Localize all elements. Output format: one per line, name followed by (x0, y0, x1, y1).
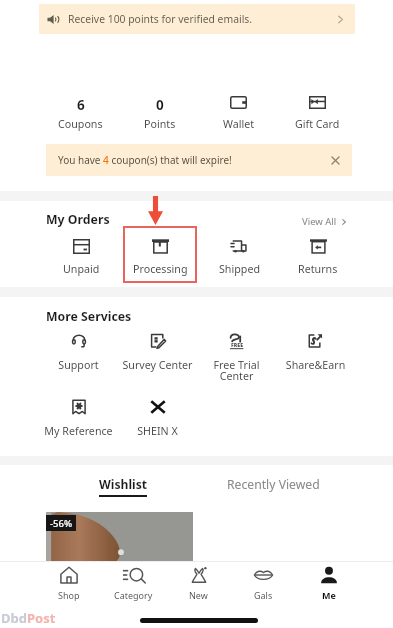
staticText: Returns (298, 262, 338, 277)
button[interactable]: 0 (120, 96, 199, 132)
staticText: 6 (77, 96, 85, 114)
button[interactable]: Gift Card (278, 96, 357, 132)
button[interactable]: New (166, 565, 231, 601)
staticText: Me (322, 589, 336, 601)
staticText: Coupons (58, 117, 103, 132)
button[interactable]: My Reference (39, 399, 118, 439)
button[interactable]: View All (300, 213, 350, 230)
staticText: View All (302, 215, 337, 228)
button[interactable]: You have 4 coupon(s) that will expire! (46, 144, 352, 176)
other: Close (330, 155, 341, 166)
staticText: My Orders (46, 211, 110, 228)
button[interactable]: Support (39, 333, 118, 373)
staticText: Category (114, 589, 153, 601)
button[interactable]: Recently Viewed (227, 476, 320, 493)
button[interactable]: Wishlist (93, 476, 153, 497)
staticText: Points (144, 117, 176, 132)
staticText: My Reference (39, 424, 118, 439)
staticText: More Services (46, 308, 132, 325)
button[interactable]: FREE (197, 333, 276, 383)
button[interactable]: Gals (231, 565, 296, 601)
staticText: Gift Card (295, 117, 340, 132)
staticText: Free Trial Center (197, 358, 276, 383)
staticText: Shipped (219, 262, 260, 277)
button[interactable]: Processing (123, 226, 197, 283)
staticText: You have 4 coupon(s) that will expire! (58, 153, 232, 167)
button[interactable]: Unpaid (44, 226, 118, 283)
button[interactable]: Share&Earn (276, 333, 355, 373)
staticText: Survey Center (118, 358, 197, 373)
button[interactable]: Me (296, 565, 361, 601)
staticText: Receive 100 points for verified emails. (68, 12, 253, 26)
staticText: Recently Viewed (227, 476, 320, 493)
staticText: Support (39, 358, 118, 373)
staticText: Wishlist (99, 476, 148, 493)
button[interactable]: Category (101, 565, 166, 601)
staticText: Unpaid (63, 262, 100, 277)
button[interactable]: Wallet (199, 96, 278, 132)
other: Open (335, 14, 346, 25)
button[interactable]: Shipped (202, 226, 276, 283)
staticText: Share&Earn (276, 358, 355, 373)
staticText: -56% (50, 517, 73, 530)
button[interactable]: Returns (281, 226, 355, 283)
staticText: Dbd (1, 609, 27, 627)
button[interactable]: SHEIN X (118, 399, 197, 439)
button[interactable]: 6 (41, 96, 120, 132)
staticText: Shop (58, 589, 80, 601)
staticText: New (189, 589, 208, 601)
staticText: Gals (254, 589, 273, 601)
staticText: SHEIN X (118, 424, 197, 439)
staticText: Processing (133, 262, 188, 277)
staticText: Post (27, 609, 56, 627)
button[interactable]: Survey Center (118, 333, 197, 373)
button[interactable]: Receive 100 points for verified emails. (39, 4, 355, 34)
button[interactable]: -56% (46, 512, 193, 561)
staticText: FREE (231, 341, 244, 348)
button[interactable]: Shop (36, 565, 101, 601)
staticText: 0 (156, 96, 164, 114)
staticText: Wallet (223, 117, 255, 132)
